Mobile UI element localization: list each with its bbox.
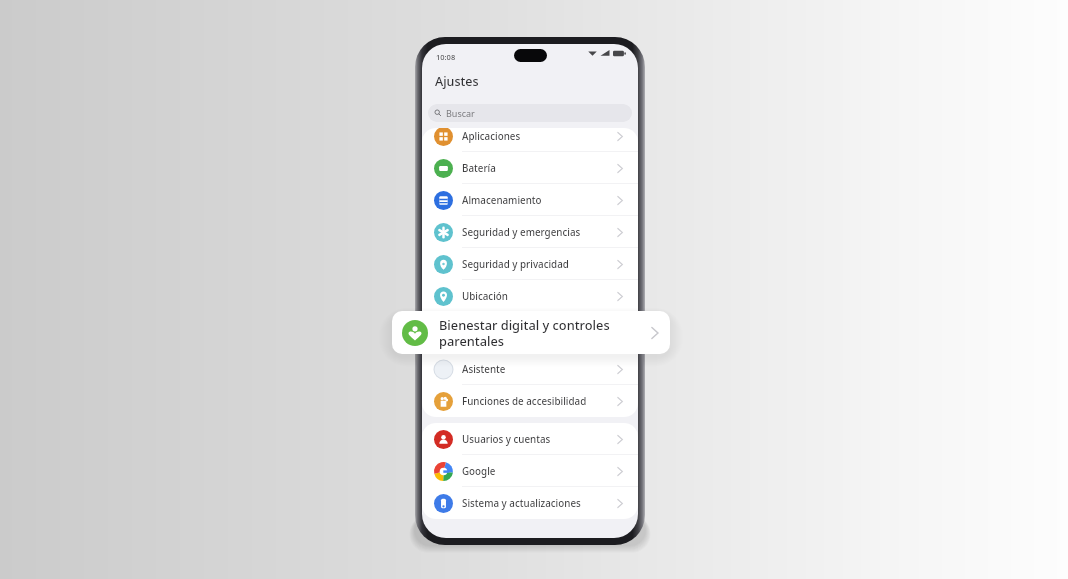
button[interactable]: Seguridad y emergencias	[422, 216, 638, 248]
button[interactable]: Buscar	[428, 104, 632, 122]
staticText: Bienestar digital y controles parentales	[462, 320, 638, 346]
staticText: Sistema y actualizaciones	[462, 497, 581, 510]
staticText: 10:08	[436, 52, 456, 62]
button[interactable]: Bienestar digital y controles parentales	[422, 312, 638, 353]
staticText: Seguridad y privacidad	[462, 258, 569, 271]
button[interactable]: Almacenamiento	[422, 184, 638, 216]
button[interactable]: Sistema y actualizaciones	[422, 487, 638, 519]
staticText: Buscar	[446, 107, 475, 119]
staticText: Bienestar digital y controles parentales	[439, 316, 610, 350]
button[interactable]: Bienestar digital y controles parentales	[392, 311, 670, 354]
button[interactable]: Google	[422, 455, 638, 487]
staticText: Ajustes	[435, 73, 479, 90]
staticText: Google	[462, 465, 496, 478]
button[interactable]: Usuarios y cuentas	[422, 423, 638, 455]
button[interactable]: Funciones de accesibilidad	[422, 385, 638, 417]
button[interactable]: Asistente	[422, 353, 638, 385]
button[interactable]: Ubicación	[422, 280, 638, 312]
button[interactable]: Aplicaciones	[422, 128, 638, 152]
staticText: Asistente	[462, 363, 506, 376]
button[interactable]: Seguridad y privacidad	[422, 248, 638, 280]
staticText: Usuarios y cuentas	[462, 433, 551, 446]
staticText: Aplicaciones	[462, 130, 521, 143]
staticText: Almacenamiento	[462, 194, 542, 207]
button[interactable]: Batería	[422, 152, 638, 184]
staticText: Funciones de accesibilidad	[462, 395, 587, 408]
staticText: Seguridad y emergencias	[462, 226, 581, 239]
staticText: Ubicación	[462, 290, 508, 303]
staticText: Batería	[462, 162, 496, 175]
